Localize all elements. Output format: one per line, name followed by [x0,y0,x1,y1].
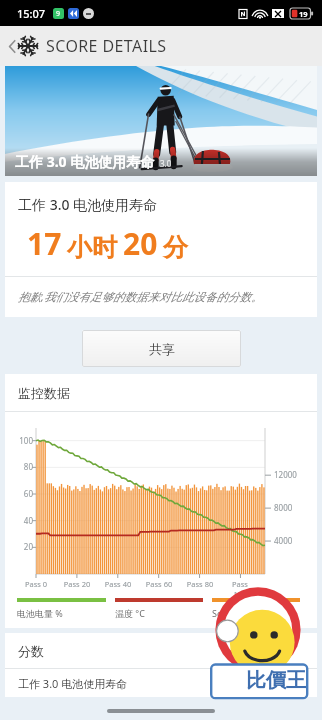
button[interactable]: Back [5,35,169,57]
staticText: 工作 3.0 电池使用寿命 [18,195,158,214]
staticText: SCORE DETAILS [46,35,167,57]
staticText: 4000 [274,535,293,546]
staticText: Score per pass [212,607,274,619]
staticText: 19 [299,9,308,19]
staticText: 17 小时 20 分 [236,676,303,691]
staticText: 共享 [149,341,175,357]
button[interactable]: 共享 [82,330,241,367]
staticText: 17 [27,223,62,264]
staticText: 3.0 [160,158,172,169]
staticText: 电池电量 % [17,607,63,619]
staticText: 60 [7,488,33,499]
staticText: Pass 80 [185,579,215,589]
staticText: 分 [163,232,188,263]
staticText: 20 [7,541,33,552]
staticText: 抱歉,我们没有足够的数据来对比此设备的分数。 [18,289,263,305]
staticText: 20 [123,223,158,264]
staticText: 8000 [274,502,293,513]
staticText: 工作 3.0 电池使用寿命 [15,152,155,171]
staticText: Pass 60 [144,579,174,589]
staticText: Pass 100 [225,579,255,599]
staticText: 小时 [67,232,117,263]
staticText: Pass 20 [62,579,92,589]
staticText: 工作 3.0 电池使用寿命 [18,676,128,691]
staticText: 比價王 [246,668,306,693]
staticText: 12000 [274,469,297,480]
staticText: 分数 [18,643,44,659]
staticText: 温度 °C [115,607,145,619]
staticText: Pass 40 [103,579,133,589]
staticText: 监控数据 [18,385,70,401]
staticText: 15:07 [17,6,46,21]
staticText: 80 [7,461,33,472]
staticText: Pass 0 [21,579,51,589]
button[interactable]: 工作 3.0 电池使用寿命 [5,669,317,697]
staticText: 40 [7,515,33,526]
staticText: 9 [56,9,61,19]
staticText: 100 [7,435,33,446]
